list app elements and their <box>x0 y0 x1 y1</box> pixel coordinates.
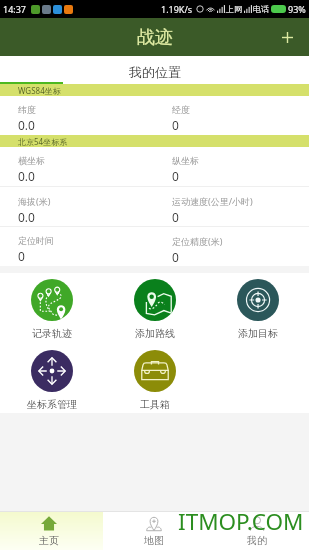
staticText: 横坐标 <box>18 155 45 166</box>
staticText: 0 <box>172 249 179 265</box>
staticText: 海拔(米) <box>18 195 51 207</box>
button[interactable]: 主页 <box>0 512 103 550</box>
button[interactable]: 添加目标 <box>206 279 309 340</box>
staticText: 地图 <box>144 534 164 547</box>
staticText: 14:37 <box>3 3 27 15</box>
staticText: 纬度 <box>18 104 36 115</box>
staticText: 电话 <box>253 4 269 14</box>
staticText: 纵坐标 <box>172 155 199 166</box>
staticText: 记录轨迹 <box>32 327 72 340</box>
staticText: 北京54坐标系 <box>18 136 68 147</box>
staticText: 1.19K/s <box>161 3 193 15</box>
button[interactable]: 记录轨迹 <box>0 279 103 340</box>
staticText: 主页 <box>39 534 59 547</box>
staticText: WGS84坐标 <box>18 85 61 96</box>
staticText: 战迹 <box>137 26 173 49</box>
button[interactable]: 地图 <box>103 512 206 550</box>
staticText: 0.0 <box>18 168 35 184</box>
staticText: 经度 <box>172 104 190 115</box>
button[interactable]: 添加路线 <box>103 279 206 340</box>
staticText: 0 <box>172 209 179 225</box>
staticText: 添加目标 <box>238 327 278 340</box>
staticText: 上网 <box>226 4 242 14</box>
staticText: 0 <box>18 248 25 264</box>
staticText: 0 <box>172 117 179 133</box>
staticText: ITMOP.COM <box>178 506 304 537</box>
staticText: 定位时间 <box>18 235 54 246</box>
staticText: 运动速度(公里/小时) <box>172 195 253 207</box>
staticText: 0.0 <box>18 209 35 225</box>
staticText: 0.0 <box>18 117 35 133</box>
staticText: 0 <box>172 168 179 184</box>
button[interactable]: 工具箱 <box>103 350 206 411</box>
staticText: 我的 <box>247 534 267 547</box>
button[interactable]: 坐标系管理 <box>0 350 103 411</box>
button[interactable]: 我的 <box>206 512 309 550</box>
staticText: 添加路线 <box>135 327 175 340</box>
staticText: 工具箱 <box>140 398 170 411</box>
staticText: 定位精度(米) <box>172 235 223 247</box>
staticText: 我的位置 <box>129 64 181 80</box>
staticText: 坐标系管理 <box>27 398 77 411</box>
button[interactable]: Add <box>265 18 309 56</box>
staticText: 93% <box>288 3 306 15</box>
